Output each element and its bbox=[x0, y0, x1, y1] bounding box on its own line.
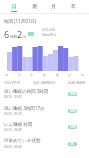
staticText: 月 bbox=[5, 73, 8, 77]
button[interactable]: 週 bbox=[23, 0, 45, 13]
button[interactable]: 月 bbox=[42, 0, 64, 13]
staticText: 土 bbox=[68, 73, 71, 77]
staticText: 目覚めている状態 bbox=[4, 138, 41, 144]
staticText: 0:15-6:20 bbox=[42, 28, 55, 32]
staticText: 03:32 - 05:15 bbox=[4, 112, 22, 116]
staticText: 水 bbox=[30, 73, 33, 77]
staticText: 年 bbox=[71, 3, 76, 9]
staticText: 時間 (11月01日) bbox=[4, 18, 37, 24]
staticText: 火 bbox=[18, 73, 21, 77]
staticText: 6 bbox=[4, 28, 10, 40]
staticText: 深い睡眠の時間 3時間 bbox=[4, 88, 49, 94]
button[interactable]: 浅い睡眠 3時間17分 bbox=[0, 104, 89, 120]
staticText: 時間 bbox=[10, 35, 17, 39]
staticText: 2% bbox=[70, 142, 75, 146]
staticText: 05:15 - 06:20 bbox=[4, 128, 22, 132]
button[interactable]: 深い睡眠の時間 3時間 bbox=[0, 87, 89, 103]
staticText: 合計 6時間2分 bbox=[33, 80, 56, 85]
staticText: 2 bbox=[17, 28, 23, 40]
staticText: 52% bbox=[70, 109, 76, 113]
staticText: 週 bbox=[32, 3, 37, 9]
staticText: 19% bbox=[70, 125, 76, 129]
staticText: 日 bbox=[81, 73, 84, 77]
staticText: 木 bbox=[43, 73, 46, 77]
staticText: 1日の平均 bbox=[4, 80, 21, 85]
staticText: 06:20 - 06:26 bbox=[4, 145, 22, 149]
button[interactable]: レム睡眠 時間 bbox=[0, 120, 89, 136]
button[interactable]: 日 bbox=[3, 0, 25, 13]
staticText: 目標 8時間 bbox=[68, 80, 85, 85]
staticText: 月 bbox=[51, 3, 56, 9]
staticText: レム睡眠 時間 bbox=[4, 121, 33, 127]
staticText: 00:15 - 03:32 bbox=[4, 95, 22, 99]
staticText: 浅い睡眠 3時間17分 bbox=[4, 105, 45, 111]
staticText: 金 bbox=[56, 73, 59, 77]
button[interactable]: 年 bbox=[62, 0, 84, 13]
button[interactable]: 目覚めている状態 bbox=[0, 137, 89, 153]
staticText: 日 bbox=[12, 3, 17, 9]
staticText: 分 bbox=[23, 35, 27, 39]
staticText: 20% bbox=[70, 92, 76, 96]
staticText: 6時間05分 bbox=[42, 33, 57, 37]
